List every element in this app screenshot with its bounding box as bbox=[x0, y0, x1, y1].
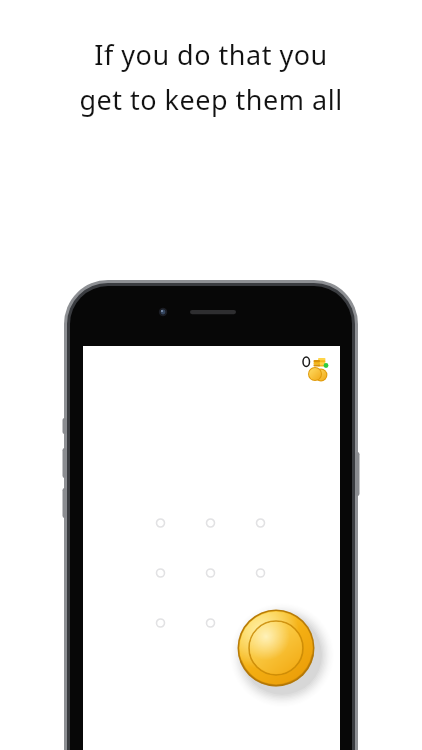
staticText: If you do that you bbox=[94, 36, 328, 73]
button[interactable]: Coin flick game preview bbox=[0, 0, 422, 750]
staticText: get to keep them all bbox=[79, 81, 343, 118]
